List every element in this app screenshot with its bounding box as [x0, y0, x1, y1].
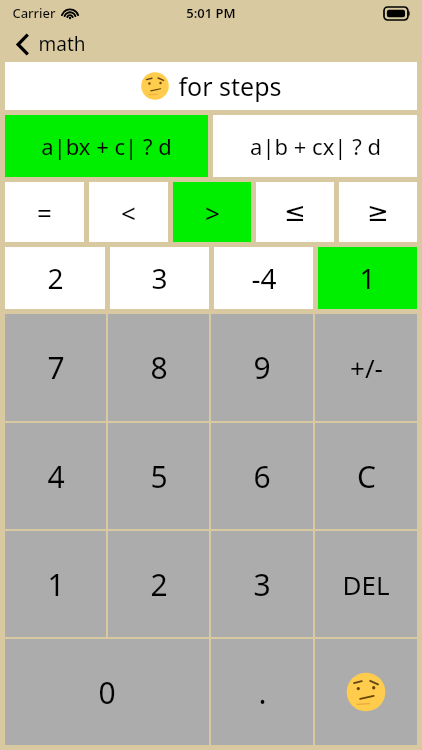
- staticText: >: [205, 195, 220, 230]
- button[interactable]: Show steps: [315, 639, 417, 745]
- button[interactable]: >: [173, 182, 251, 242]
- button[interactable]: .: [211, 639, 313, 745]
- button[interactable]: a|b + cx| ? d: [213, 115, 417, 177]
- button[interactable]: Back: [10, 27, 92, 61]
- button[interactable]: 0: [5, 639, 209, 745]
- button[interactable]: 3: [211, 531, 313, 637]
- button[interactable]: <: [89, 182, 168, 242]
- button[interactable]: 8: [108, 314, 209, 421]
- button[interactable]: 2: [5, 247, 105, 309]
- button[interactable]: 7: [5, 314, 106, 421]
- button[interactable]: DEL: [315, 531, 417, 637]
- staticText: 9: [253, 347, 271, 388]
- staticText: 3: [253, 564, 271, 605]
- staticText: =: [37, 195, 52, 230]
- button[interactable]: 9: [211, 314, 313, 421]
- staticText: 5: [150, 456, 168, 497]
- staticText: DEL: [342, 567, 390, 602]
- button[interactable]: 4: [5, 423, 106, 529]
- staticText: for steps: [178, 69, 282, 103]
- button[interactable]: -4: [214, 247, 313, 309]
- staticText: ≤: [284, 197, 306, 227]
- button[interactable]: for steps: [5, 62, 417, 110]
- staticText: Carrier: [12, 4, 56, 22]
- button[interactable]: 3: [110, 247, 209, 309]
- staticText: 1: [359, 259, 376, 297]
- staticText: math: [38, 31, 86, 57]
- staticText: C: [357, 456, 376, 497]
- staticText: ≥: [367, 197, 389, 227]
- staticText: a|b + cx| ? d: [250, 131, 381, 161]
- staticText: 5:01 PM: [186, 4, 236, 22]
- button[interactable]: ≤: [256, 182, 334, 242]
- staticText: 2: [47, 259, 64, 297]
- button[interactable]: 2: [108, 531, 209, 637]
- other: Back: [16, 34, 29, 55]
- staticText: 6: [253, 456, 271, 497]
- button[interactable]: =: [5, 182, 84, 242]
- staticText: -4: [251, 259, 277, 297]
- staticText: .: [258, 672, 267, 713]
- button[interactable]: 1: [318, 247, 417, 309]
- staticText: <: [121, 195, 136, 230]
- staticText: +/-: [350, 350, 383, 385]
- staticText: 2: [150, 564, 168, 605]
- staticText: 4: [47, 456, 65, 497]
- staticText: 1: [47, 564, 65, 605]
- staticText: 0: [98, 672, 116, 713]
- button[interactable]: 5: [108, 423, 209, 529]
- staticText: 8: [150, 347, 168, 388]
- button[interactable]: 6: [211, 423, 313, 529]
- button[interactable]: C: [315, 423, 417, 529]
- staticText: 3: [151, 259, 168, 297]
- staticText: 7: [47, 347, 65, 388]
- staticText: a|bx + c| ? d: [41, 131, 172, 161]
- button[interactable]: +/-: [315, 314, 417, 421]
- button[interactable]: 1: [5, 531, 106, 637]
- button[interactable]: ≥: [339, 182, 417, 242]
- button[interactable]: a|bx + c| ? d: [5, 115, 208, 177]
